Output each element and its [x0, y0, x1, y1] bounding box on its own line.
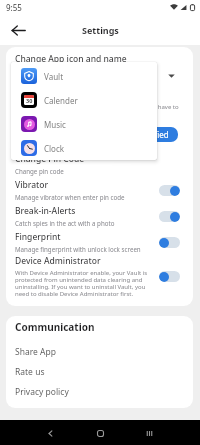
button[interactable]: Device Administrator [15, 255, 180, 298]
staticText: Share App [15, 346, 56, 358]
staticText: Communication [15, 320, 95, 334]
button[interactable]: Fingerprint [15, 229, 180, 255]
button[interactable]: Toggle [159, 211, 180, 222]
staticText: Choose an icon and a name that you want … [15, 68, 180, 118]
button[interactable]: Back [41, 424, 59, 442]
staticText: Catch spies in the act with a photo [15, 219, 115, 227]
button[interactable]: Home [91, 424, 109, 442]
staticText: Change pin code [15, 167, 64, 175]
button[interactable]: Toggle [159, 271, 180, 282]
button[interactable]: Clock [11, 136, 157, 160]
staticText: Fingerprint [15, 231, 61, 243]
staticText: Change Pin Code [15, 153, 85, 165]
button[interactable]: Vibrator [15, 177, 180, 203]
button[interactable]: Toggle [159, 237, 180, 248]
button[interactable]: Vault [11, 64, 157, 88]
button[interactable]: Share App [15, 342, 185, 362]
staticText: Manage vibrator when enter pin code [15, 193, 125, 201]
staticText: 9:55 [6, 2, 22, 13]
button[interactable]: Recents [140, 424, 158, 442]
staticText: Calender [44, 95, 78, 106]
button[interactable]: Back [7, 19, 29, 41]
button[interactable]: Change App icon and name [15, 53, 180, 143]
staticText: With Device Administrator enable, your V… [15, 269, 151, 298]
staticText: Clock [44, 143, 65, 154]
staticText: Vibrator [15, 179, 49, 191]
staticText: 30 [26, 97, 33, 104]
staticText: Break-in-Alerts [15, 205, 76, 217]
staticText: Privacy policy [15, 386, 69, 398]
button[interactable]: Privacy policy [15, 382, 185, 402]
staticText: Vault [44, 71, 64, 82]
staticText: Rate us [15, 366, 45, 378]
staticText: Device Administrator [15, 255, 101, 267]
button[interactable]: Change Pin Code [15, 151, 180, 177]
button[interactable]: Music [11, 112, 157, 136]
staticText: Settings [82, 24, 119, 36]
button[interactable]: Toggle [159, 185, 180, 196]
staticText: Music [44, 119, 66, 130]
button[interactable]: Rate us [15, 362, 185, 382]
staticText: Verified [140, 129, 169, 140]
staticText: Change App icon and name [15, 53, 127, 65]
button[interactable]: 30 [11, 88, 157, 112]
staticText: Manage fingerprint with unlock lock scre… [15, 245, 141, 253]
button[interactable]: Break-in-Alerts [15, 203, 180, 229]
